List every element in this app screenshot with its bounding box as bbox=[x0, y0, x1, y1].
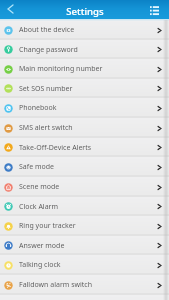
button[interactable]: Back bbox=[0, 0, 21, 20]
button[interactable]: Language bbox=[0, 295, 169, 300]
button[interactable]: Take-Off-Device Alerts bbox=[0, 138, 169, 157]
button[interactable]: Scene mode bbox=[0, 177, 169, 197]
staticText: Take-Off-Device Alerts bbox=[19, 143, 156, 153]
staticText: Falldown alarm switch bbox=[19, 280, 156, 290]
button[interactable]: About the device bbox=[0, 20, 169, 40]
button[interactable]: Ring your tracker bbox=[0, 216, 169, 236]
button[interactable]: Phonebook bbox=[0, 98, 169, 118]
staticText: Phonebook bbox=[19, 103, 156, 113]
staticText: Talking clock bbox=[19, 260, 156, 270]
button[interactable]: Change password bbox=[0, 40, 169, 59]
button[interactable]: Answer mode bbox=[0, 236, 169, 255]
button[interactable]: Main monitoring number bbox=[0, 59, 169, 79]
staticText: Main monitoring number bbox=[19, 64, 156, 74]
staticText: Set SOS number bbox=[19, 84, 156, 94]
staticText: Answer mode bbox=[19, 241, 156, 251]
staticText: Change password bbox=[19, 45, 156, 55]
button[interactable]: Talking clock bbox=[0, 255, 169, 275]
staticText: About the device bbox=[19, 25, 156, 35]
button[interactable]: Safe mode bbox=[0, 157, 169, 177]
button[interactable]: Set SOS number bbox=[0, 79, 169, 98]
staticText: Scene mode bbox=[19, 182, 156, 192]
button[interactable]: Clock Alarm bbox=[0, 197, 169, 216]
button[interactable]: Falldown alarm switch bbox=[0, 275, 169, 295]
staticText: SMS alert switch bbox=[19, 123, 156, 133]
button[interactable]: Menu bbox=[139, 0, 169, 20]
staticText: Clock Alarm bbox=[19, 202, 156, 212]
staticText: Ring your tracker bbox=[19, 221, 156, 231]
button[interactable]: SMS alert switch bbox=[0, 118, 169, 138]
staticText: Settings bbox=[66, 5, 104, 18]
staticText: Safe mode bbox=[19, 162, 156, 172]
